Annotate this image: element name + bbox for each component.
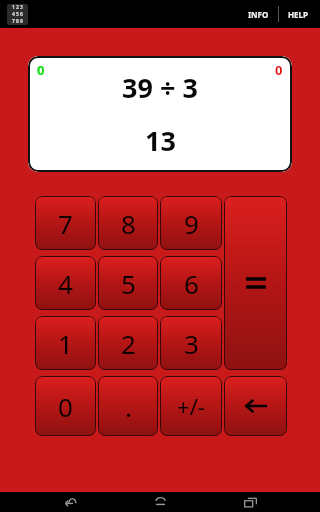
button[interactable]: 0 bbox=[35, 376, 96, 436]
staticText: 3 bbox=[20, 4, 23, 11]
button[interactable]: 4 bbox=[35, 256, 96, 310]
staticText: 3 bbox=[184, 326, 199, 361]
button[interactable]: . bbox=[98, 376, 158, 436]
button[interactable]: Backspace bbox=[224, 376, 287, 436]
button[interactable]: 5 bbox=[98, 256, 158, 310]
staticText: 9 bbox=[20, 18, 23, 25]
staticText: 9 bbox=[184, 206, 199, 241]
staticText: 1 bbox=[58, 326, 73, 361]
staticText: 4 bbox=[58, 266, 73, 301]
button[interactable]: +/- bbox=[160, 376, 222, 436]
staticText: 39 ÷ 3 bbox=[122, 69, 198, 106]
staticText: 7 bbox=[12, 18, 15, 25]
staticText: 0 bbox=[37, 61, 45, 79]
button[interactable]: 8 bbox=[98, 196, 158, 250]
button[interactable]: Home bbox=[140, 492, 180, 512]
staticText: 7 bbox=[58, 206, 73, 241]
staticText: 2 bbox=[16, 4, 19, 11]
staticText: 13 bbox=[145, 122, 176, 159]
staticText: INFO bbox=[248, 9, 269, 20]
staticText: 4 bbox=[12, 11, 15, 18]
button[interactable]: 0 bbox=[28, 56, 292, 172]
button[interactable]: 1 bbox=[35, 316, 96, 370]
button[interactable]: 7 bbox=[35, 196, 96, 250]
staticText: 8 bbox=[121, 206, 136, 241]
button[interactable]: 9 bbox=[160, 196, 222, 250]
button[interactable]: 6 bbox=[160, 256, 222, 310]
button[interactable]: 3 bbox=[160, 316, 222, 370]
button[interactable]: Recents bbox=[230, 492, 270, 512]
button[interactable]: INFO bbox=[239, 0, 278, 28]
staticText: 5 bbox=[121, 266, 136, 301]
staticText: 0 bbox=[58, 389, 73, 424]
staticText: 0 bbox=[275, 61, 283, 79]
staticText: 2 bbox=[121, 326, 136, 361]
staticText: 5 bbox=[16, 11, 19, 18]
button[interactable]: Back bbox=[50, 492, 90, 512]
staticText: 1 bbox=[12, 4, 15, 11]
button[interactable]: 2 bbox=[98, 316, 158, 370]
button[interactable] bbox=[224, 196, 287, 370]
staticText: . bbox=[125, 389, 132, 424]
staticText: 6 bbox=[20, 11, 23, 18]
button[interactable]: App icon bbox=[7, 4, 28, 25]
staticText: HELP bbox=[288, 9, 309, 20]
staticText: +/- bbox=[177, 391, 205, 421]
button[interactable]: HELP bbox=[279, 0, 320, 28]
staticText: 8 bbox=[16, 18, 19, 25]
staticText: 6 bbox=[184, 266, 199, 301]
